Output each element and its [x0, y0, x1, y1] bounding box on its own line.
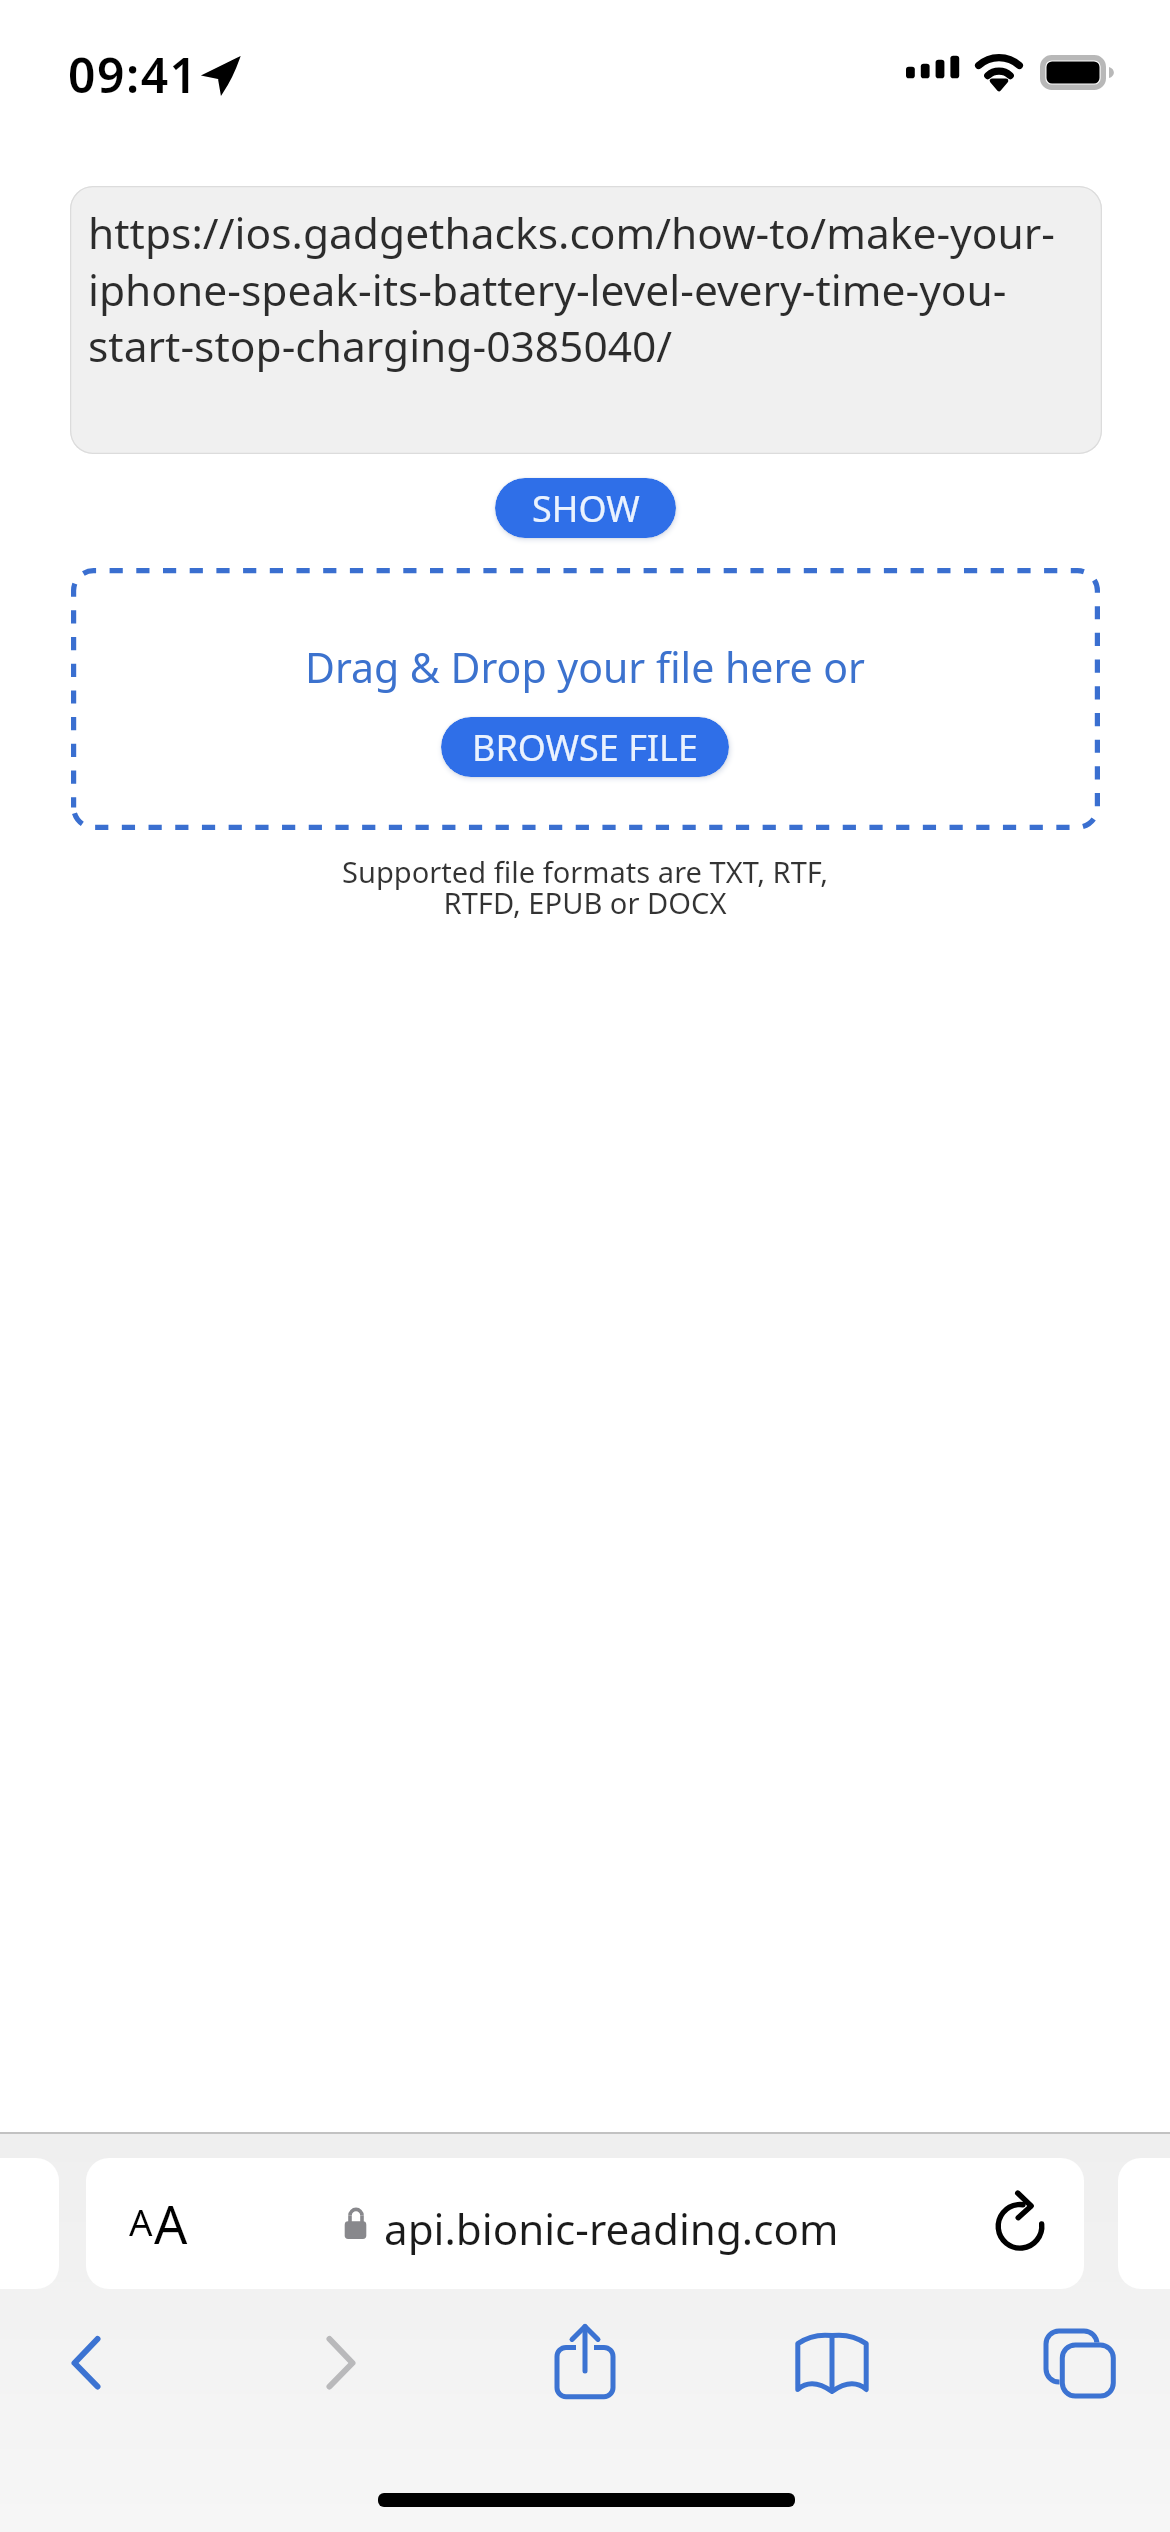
button[interactable]: Tabs	[1024, 2307, 1134, 2417]
staticText: 09:41	[68, 42, 199, 107]
button[interactable]: Bookmarks	[777, 2307, 887, 2417]
staticText: https://ios.gadgethacks.com/how-to/make-…	[88, 204, 1055, 375]
staticText: Supported file formats are TXT, RTF, RTF…	[0, 852, 1170, 923]
staticText: SHOW	[532, 484, 640, 533]
button[interactable]: Back	[31, 2308, 141, 2418]
staticText: BROWSE FILE	[472, 723, 698, 772]
staticText: api.bionic-reading.com	[384, 2200, 839, 2257]
button[interactable]: Forward	[286, 2308, 396, 2418]
button[interactable]: SHOW	[495, 478, 676, 538]
staticText: A	[129, 2197, 153, 2247]
button[interactable]: BROWSE FILE	[441, 717, 729, 777]
button[interactable]: Text size	[120, 2190, 198, 2256]
button[interactable]: Text size	[86, 2158, 1084, 2289]
button[interactable]: Share	[530, 2307, 640, 2417]
staticText: Drag & Drop your file here or	[0, 639, 1170, 695]
staticText: A	[154, 2188, 188, 2254]
button[interactable]: Reload	[976, 2182, 1064, 2270]
button[interactable]: https://ios.gadgethacks.com/how-to/make-…	[70, 186, 1102, 454]
